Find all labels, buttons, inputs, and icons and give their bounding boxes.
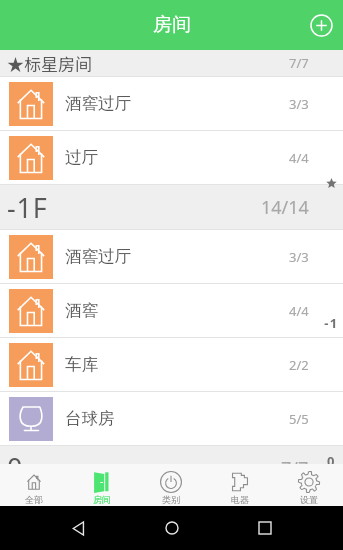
staticText: 酒窖过厅: [65, 93, 131, 114]
staticText: 酒窖过厅: [65, 246, 131, 267]
staticText: 台球房: [65, 408, 115, 429]
staticText: 房间: [93, 494, 111, 505]
staticText: 3/3: [289, 248, 309, 266]
button[interactable]: 电器: [205, 464, 274, 506]
button[interactable]: 台球房: [0, 392, 343, 445]
button[interactable]: 酒窖: [0, 284, 343, 337]
staticText: 类别: [162, 494, 180, 505]
button[interactable]: 设置: [274, 464, 343, 506]
button[interactable]: 全部: [0, 464, 68, 506]
staticText: 车库: [65, 354, 98, 375]
staticText: -1F: [7, 189, 48, 226]
button[interactable]: Recent apps: [250, 513, 280, 543]
button[interactable]: 酒窖过厅: [0, 77, 343, 130]
staticText: 过厅: [65, 147, 98, 168]
staticText: 酒窖: [65, 300, 98, 321]
button[interactable]: 酒窖过厅: [0, 230, 343, 283]
staticText: 0: [7, 449, 24, 464]
button[interactable]: 过厅: [0, 131, 343, 184]
staticText: 3/3: [289, 95, 309, 113]
button[interactable]: 0: [0, 446, 343, 464]
button[interactable]: 类别: [136, 464, 205, 506]
staticText: 4/4: [289, 149, 309, 167]
staticText: 全部: [25, 494, 43, 505]
button[interactable]: -1F: [0, 185, 343, 229]
button[interactable]: Back: [63, 513, 93, 543]
staticText: ★标星房间: [7, 51, 92, 76]
staticText: 7/7: [281, 456, 309, 464]
button[interactable]: Home: [157, 513, 187, 543]
button[interactable]: Add room: [306, 10, 336, 40]
staticText: 7/7: [289, 54, 309, 72]
staticText: 5/5: [289, 410, 309, 428]
staticText: 0: [320, 452, 343, 464]
staticText: 电器: [231, 494, 249, 505]
button[interactable]: ★标星房间: [0, 50, 343, 76]
staticText: 设置: [300, 494, 318, 505]
staticText: 4/4: [289, 302, 309, 320]
staticText: 14/14: [261, 195, 309, 220]
staticText: -1: [320, 314, 343, 332]
button[interactable]: 房间: [68, 464, 136, 506]
staticText: 房间: [153, 13, 191, 37]
button[interactable]: 车库: [0, 338, 343, 391]
staticText: 2/2: [289, 356, 309, 374]
